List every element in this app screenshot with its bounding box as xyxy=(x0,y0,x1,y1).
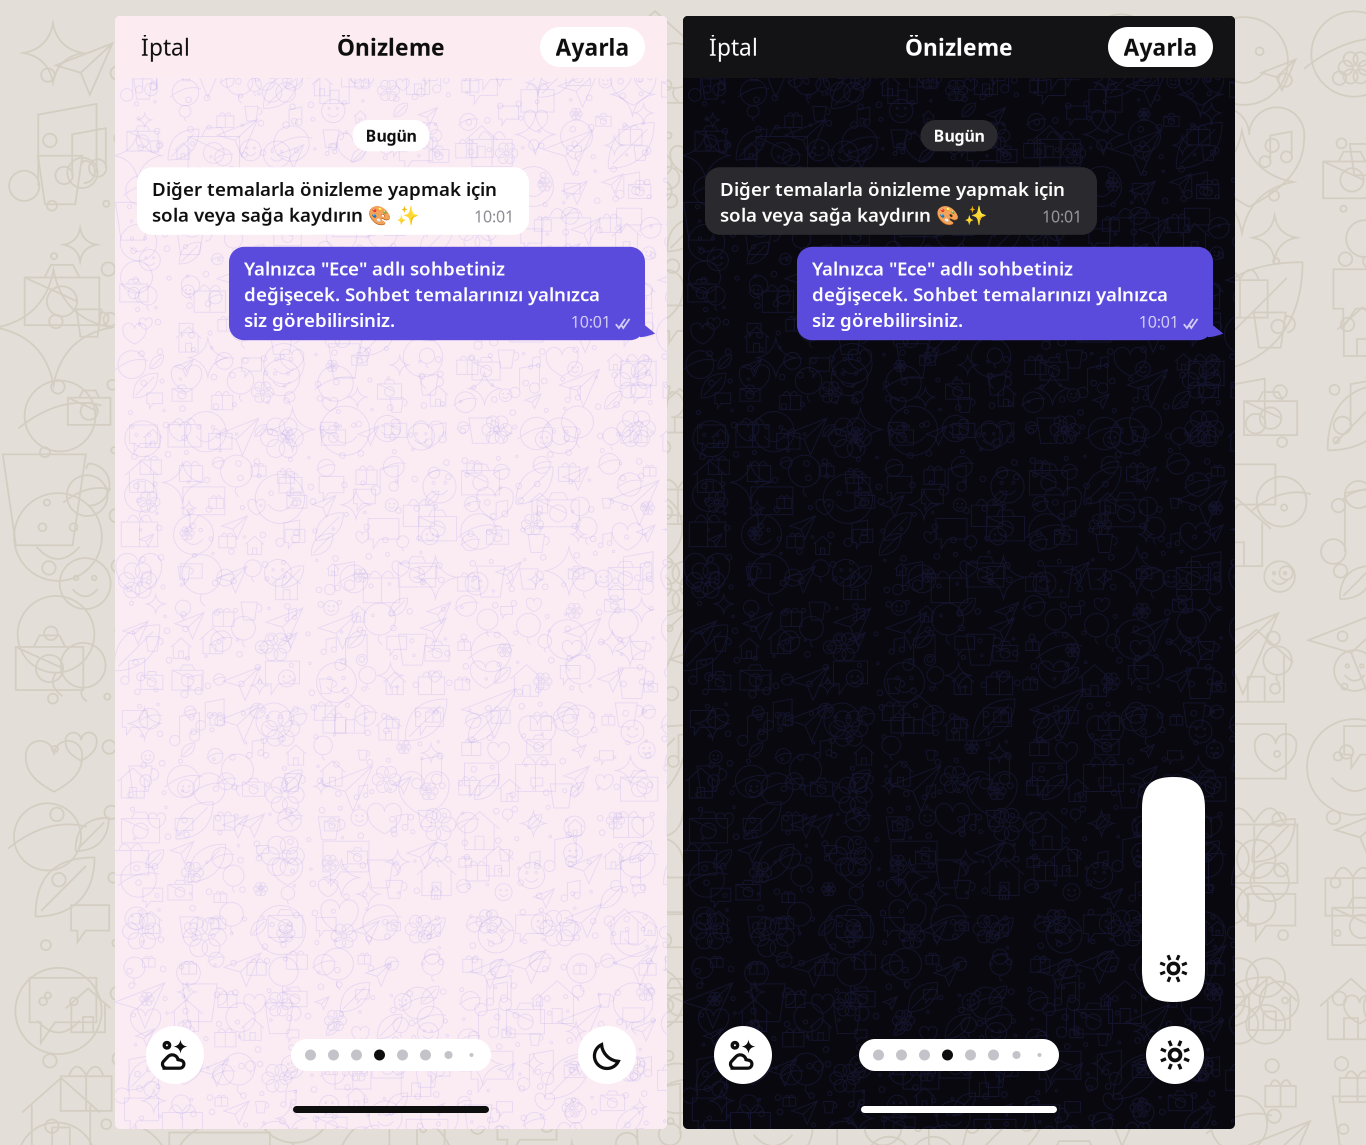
staticText: Yalnızca "Ece" adlı sohbetiniz xyxy=(244,256,505,281)
staticText: İptal xyxy=(709,32,758,62)
staticText: Bugün xyxy=(933,125,984,146)
staticText: Önizleme xyxy=(905,32,1013,62)
staticText: siz görebilirsiniz. xyxy=(244,307,395,332)
button[interactable]: İptal xyxy=(683,20,772,74)
button[interactable]: Brightness xyxy=(1142,777,1205,1002)
staticText: siz görebilirsiniz. xyxy=(812,307,963,332)
button[interactable]: Dark theme xyxy=(578,1026,636,1084)
button[interactable]: Automatic theme xyxy=(146,1026,204,1084)
staticText: Diğer temalarla önizleme yapmak için xyxy=(152,176,497,201)
staticText: Ayarla xyxy=(1123,32,1197,62)
staticText: sola veya sağa kaydırın 🎨 ✨ xyxy=(152,202,419,227)
staticText: Ayarla xyxy=(555,32,629,62)
staticText: 10:01 xyxy=(571,311,611,332)
staticText: değişecek. Sohbet temalarınızı yalnızca xyxy=(244,282,600,306)
button[interactable]: Ayarla xyxy=(540,27,667,67)
staticText: Bugün xyxy=(365,125,416,146)
staticText: değişecek. Sohbet temalarınızı yalnızca xyxy=(812,282,1168,306)
button[interactable]: Light theme xyxy=(1146,1026,1204,1084)
staticText: 10:01 xyxy=(474,206,514,227)
button[interactable]: Ayarla xyxy=(1108,27,1235,67)
staticText: İptal xyxy=(141,32,190,62)
staticText: Diğer temalarla önizleme yapmak için xyxy=(720,176,1065,201)
staticText: Yalnızca "Ece" adlı sohbetiniz xyxy=(812,256,1073,281)
staticText: Önizleme xyxy=(337,32,445,62)
staticText: 10:01 xyxy=(1139,311,1179,332)
button[interactable]: Automatic theme xyxy=(714,1026,772,1084)
staticText: 10:01 xyxy=(1042,206,1082,227)
staticText: sola veya sağa kaydırın 🎨 ✨ xyxy=(720,202,987,227)
button[interactable]: İptal xyxy=(115,20,204,74)
